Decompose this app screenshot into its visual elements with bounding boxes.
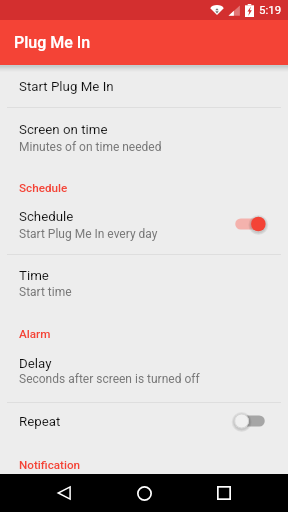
button[interactable]: Back [44,474,84,512]
staticText: Notification [19,458,81,472]
staticText: Alarm [19,327,51,341]
staticText: Time [19,268,49,284]
staticText: Start Plug Me In every day [19,227,158,241]
staticText: Repeat [19,414,61,430]
button[interactable] [0,108,288,158]
button[interactable] [0,67,288,107]
staticText: Schedule [19,181,68,195]
staticText: Seconds after screen is turned off [19,372,200,386]
button[interactable] [0,255,288,310]
staticText: Start time [19,285,72,299]
staticText: Minutes of on time needed [19,140,162,154]
staticText: Start Plug Me In [19,79,114,95]
button[interactable] [0,197,288,253]
button[interactable]: Home [124,474,164,512]
staticText: Schedule [19,209,74,225]
button[interactable]: Off [228,409,272,433]
staticText: Plug Me In [14,33,91,52]
button[interactable]: Recents [204,474,244,512]
button[interactable] [0,403,288,443]
staticText: Delay [19,356,52,372]
staticText: 5:19 [259,3,282,16]
staticText: Screen on time [19,122,108,138]
button[interactable] [0,344,288,401]
button[interactable]: On [228,212,272,236]
